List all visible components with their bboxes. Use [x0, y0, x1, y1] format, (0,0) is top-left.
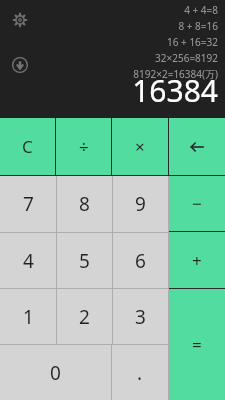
button[interactable]: 4 — [0, 233, 56, 288]
staticText: 3 — [135, 304, 146, 330]
button[interactable]: − — [169, 176, 225, 231]
staticText: 8 + 8=16 — [178, 19, 218, 33]
button[interactable]: 2 — [57, 289, 112, 344]
staticText: 2 — [79, 304, 90, 330]
staticText: ÷ — [79, 135, 89, 158]
staticText: + — [192, 249, 202, 272]
staticText: 7 — [23, 191, 34, 217]
staticText: 4 + 4=8 — [184, 3, 218, 17]
button[interactable]: 1 — [0, 289, 56, 344]
staticText: 16384 — [132, 70, 218, 111]
button[interactable]: Download — [6, 51, 34, 79]
staticText: 6 — [135, 248, 146, 274]
button[interactable]: = — [169, 289, 225, 400]
staticText: 8 — [79, 191, 90, 217]
button[interactable]: 7 — [0, 176, 56, 232]
staticText: 9 — [135, 191, 146, 217]
staticText: 16 + 16=32 — [167, 35, 218, 49]
staticText: − — [192, 192, 202, 215]
button[interactable]: × — [112, 118, 168, 175]
staticText: = — [192, 333, 202, 356]
staticText: C — [22, 135, 33, 158]
staticText: 5 — [79, 248, 90, 274]
staticText: × — [135, 135, 145, 158]
staticText: 8192×2=16384(万) — [133, 67, 218, 81]
button[interactable]: ÷ — [56, 118, 111, 175]
button[interactable]: 5 — [57, 233, 112, 288]
button[interactable]: 6 — [113, 233, 168, 288]
button[interactable]: 9 — [113, 176, 168, 232]
button[interactable]: Backspace — [169, 118, 225, 175]
staticText: 0 — [50, 360, 61, 386]
button[interactable]: Settings — [6, 6, 34, 34]
staticText: 4 — [23, 248, 34, 274]
staticText: . — [137, 360, 143, 386]
button[interactable]: 3 — [113, 289, 168, 344]
button[interactable]: C — [0, 118, 55, 175]
button[interactable]: 0 — [0, 345, 111, 400]
button[interactable]: + — [169, 232, 225, 288]
staticText: 32×256=8192 — [155, 51, 218, 65]
button[interactable]: 8 — [57, 176, 112, 232]
staticText: 1 — [23, 304, 34, 330]
button[interactable]: . — [112, 345, 168, 400]
